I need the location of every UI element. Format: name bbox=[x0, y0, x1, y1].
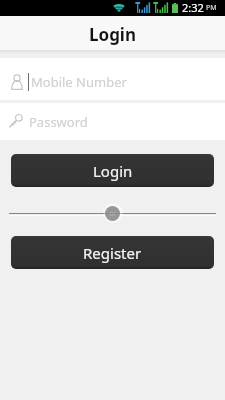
staticText: Password bbox=[29, 113, 88, 131]
button[interactable]: Login bbox=[11, 154, 214, 187]
staticText: PM bbox=[206, 3, 217, 13]
button[interactable]: Password bbox=[0, 103, 225, 140]
staticText: or bbox=[109, 209, 117, 219]
button[interactable]: Register bbox=[11, 236, 214, 269]
other: User bbox=[11, 74, 23, 90]
button[interactable]: User bbox=[0, 58, 225, 100]
button[interactable]: or bbox=[105, 206, 120, 221]
staticText: Register bbox=[83, 243, 142, 263]
staticText: Mobile Number bbox=[31, 73, 127, 91]
staticText: 2:32 bbox=[182, 0, 204, 15]
staticText: Login bbox=[89, 23, 137, 46]
other: Wi-Fi bbox=[113, 3, 125, 12]
staticText: Login bbox=[93, 161, 133, 181]
other: Password bbox=[8, 114, 23, 128]
